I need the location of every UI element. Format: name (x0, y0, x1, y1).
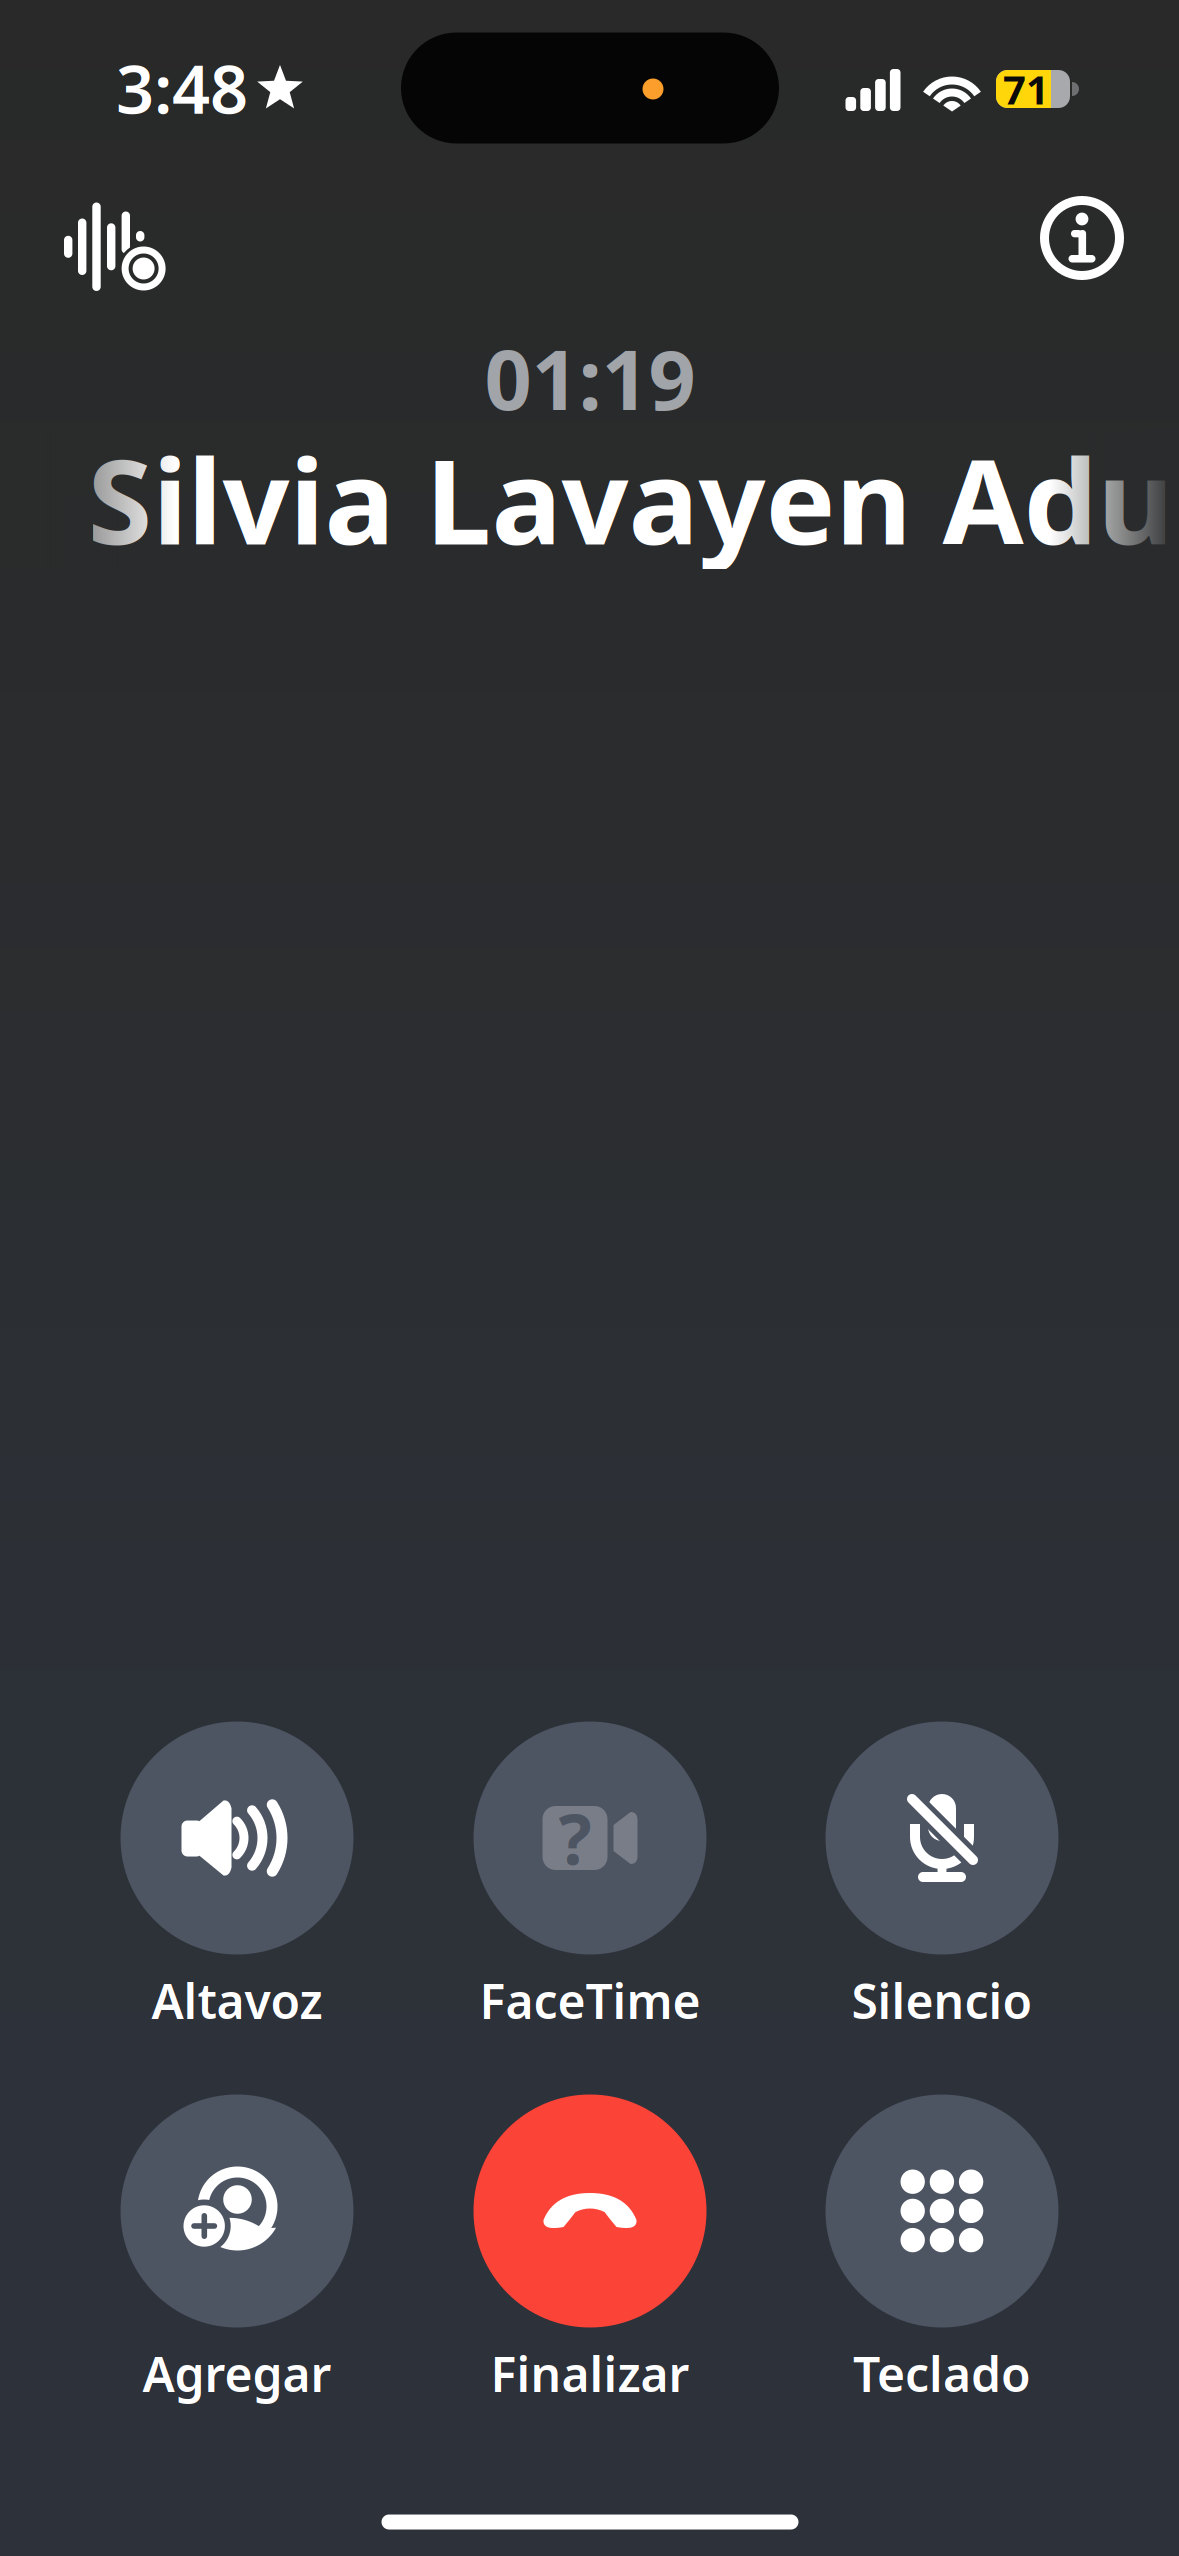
button[interactable]: Teclado (766, 2094, 1118, 2407)
staticText: Silencio (851, 1969, 1032, 2032)
staticText: 3:48 (116, 44, 248, 132)
button[interactable]: Agregar (61, 2094, 413, 2407)
button[interactable]: Call recording (40, 182, 190, 312)
button[interactable]: Finalizar (414, 2094, 766, 2407)
button[interactable]: Call info (1020, 176, 1144, 300)
staticText: Agregar (142, 2342, 331, 2405)
staticText: 71 (1003, 62, 1049, 115)
staticText: Altavoz (151, 1969, 322, 2032)
staticText: Teclado (853, 2342, 1031, 2405)
staticText: ? (558, 1792, 591, 1884)
staticText: 01:19 (484, 323, 695, 433)
staticText: Silvia Lavayen Adurriaga (87, 421, 1179, 577)
button[interactable]: Altavoz (61, 1721, 413, 2034)
staticText: Finalizar (490, 2342, 689, 2405)
button[interactable]: ? (414, 1721, 766, 2034)
button[interactable]: Silencio (766, 1721, 1118, 2034)
staticText: FaceTime (479, 1969, 700, 2032)
